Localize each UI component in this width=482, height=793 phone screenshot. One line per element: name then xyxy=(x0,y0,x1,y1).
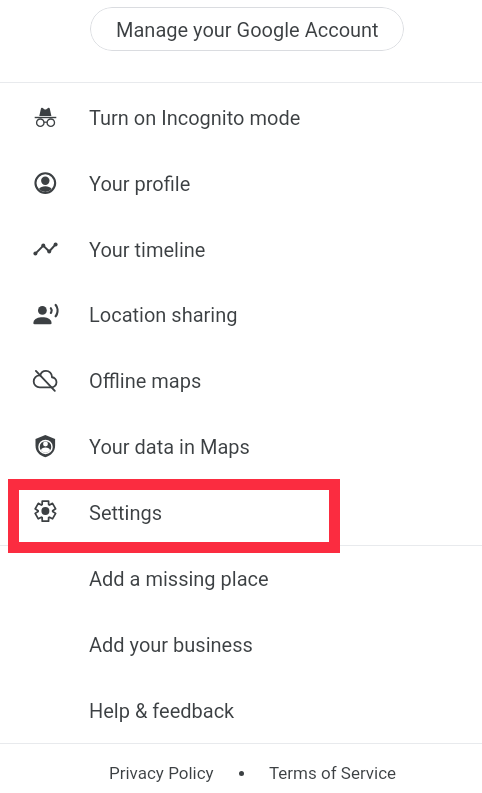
button[interactable]: Settings xyxy=(0,479,482,545)
button[interactable]: Privacy Policy xyxy=(107,763,216,783)
staticText: Your profile xyxy=(89,172,191,195)
staticText: Offline maps xyxy=(89,369,202,392)
button[interactable]: Terms of Service xyxy=(267,763,399,783)
staticText: Add your business xyxy=(89,633,253,656)
staticText: Location sharing xyxy=(89,303,238,326)
button[interactable]: Offline maps xyxy=(0,347,482,413)
button[interactable]: Your timeline xyxy=(0,216,482,282)
button[interactable]: Help & feedback xyxy=(0,677,482,743)
button[interactable]: Manage your Google Account xyxy=(90,7,404,51)
staticText: Privacy Policy xyxy=(109,763,214,783)
staticText: Your timeline xyxy=(89,238,206,261)
button[interactable]: Add a missing place xyxy=(0,545,482,611)
staticText: Add a missing place xyxy=(89,567,269,590)
button[interactable]: Your profile xyxy=(0,150,482,216)
button[interactable]: Add your business xyxy=(0,611,482,677)
staticText: Settings xyxy=(89,501,163,524)
staticText: Help & feedback xyxy=(89,699,235,722)
button[interactable]: Your data in Maps xyxy=(0,413,482,479)
staticText: Your data in Maps xyxy=(89,435,250,458)
button[interactable]: Turn on Incognito mode xyxy=(0,84,482,150)
staticText: Terms of Service xyxy=(269,763,397,783)
button[interactable]: Location sharing xyxy=(0,281,482,347)
staticText: Turn on Incognito mode xyxy=(89,106,301,129)
staticText: Manage your Google Account xyxy=(116,18,379,41)
